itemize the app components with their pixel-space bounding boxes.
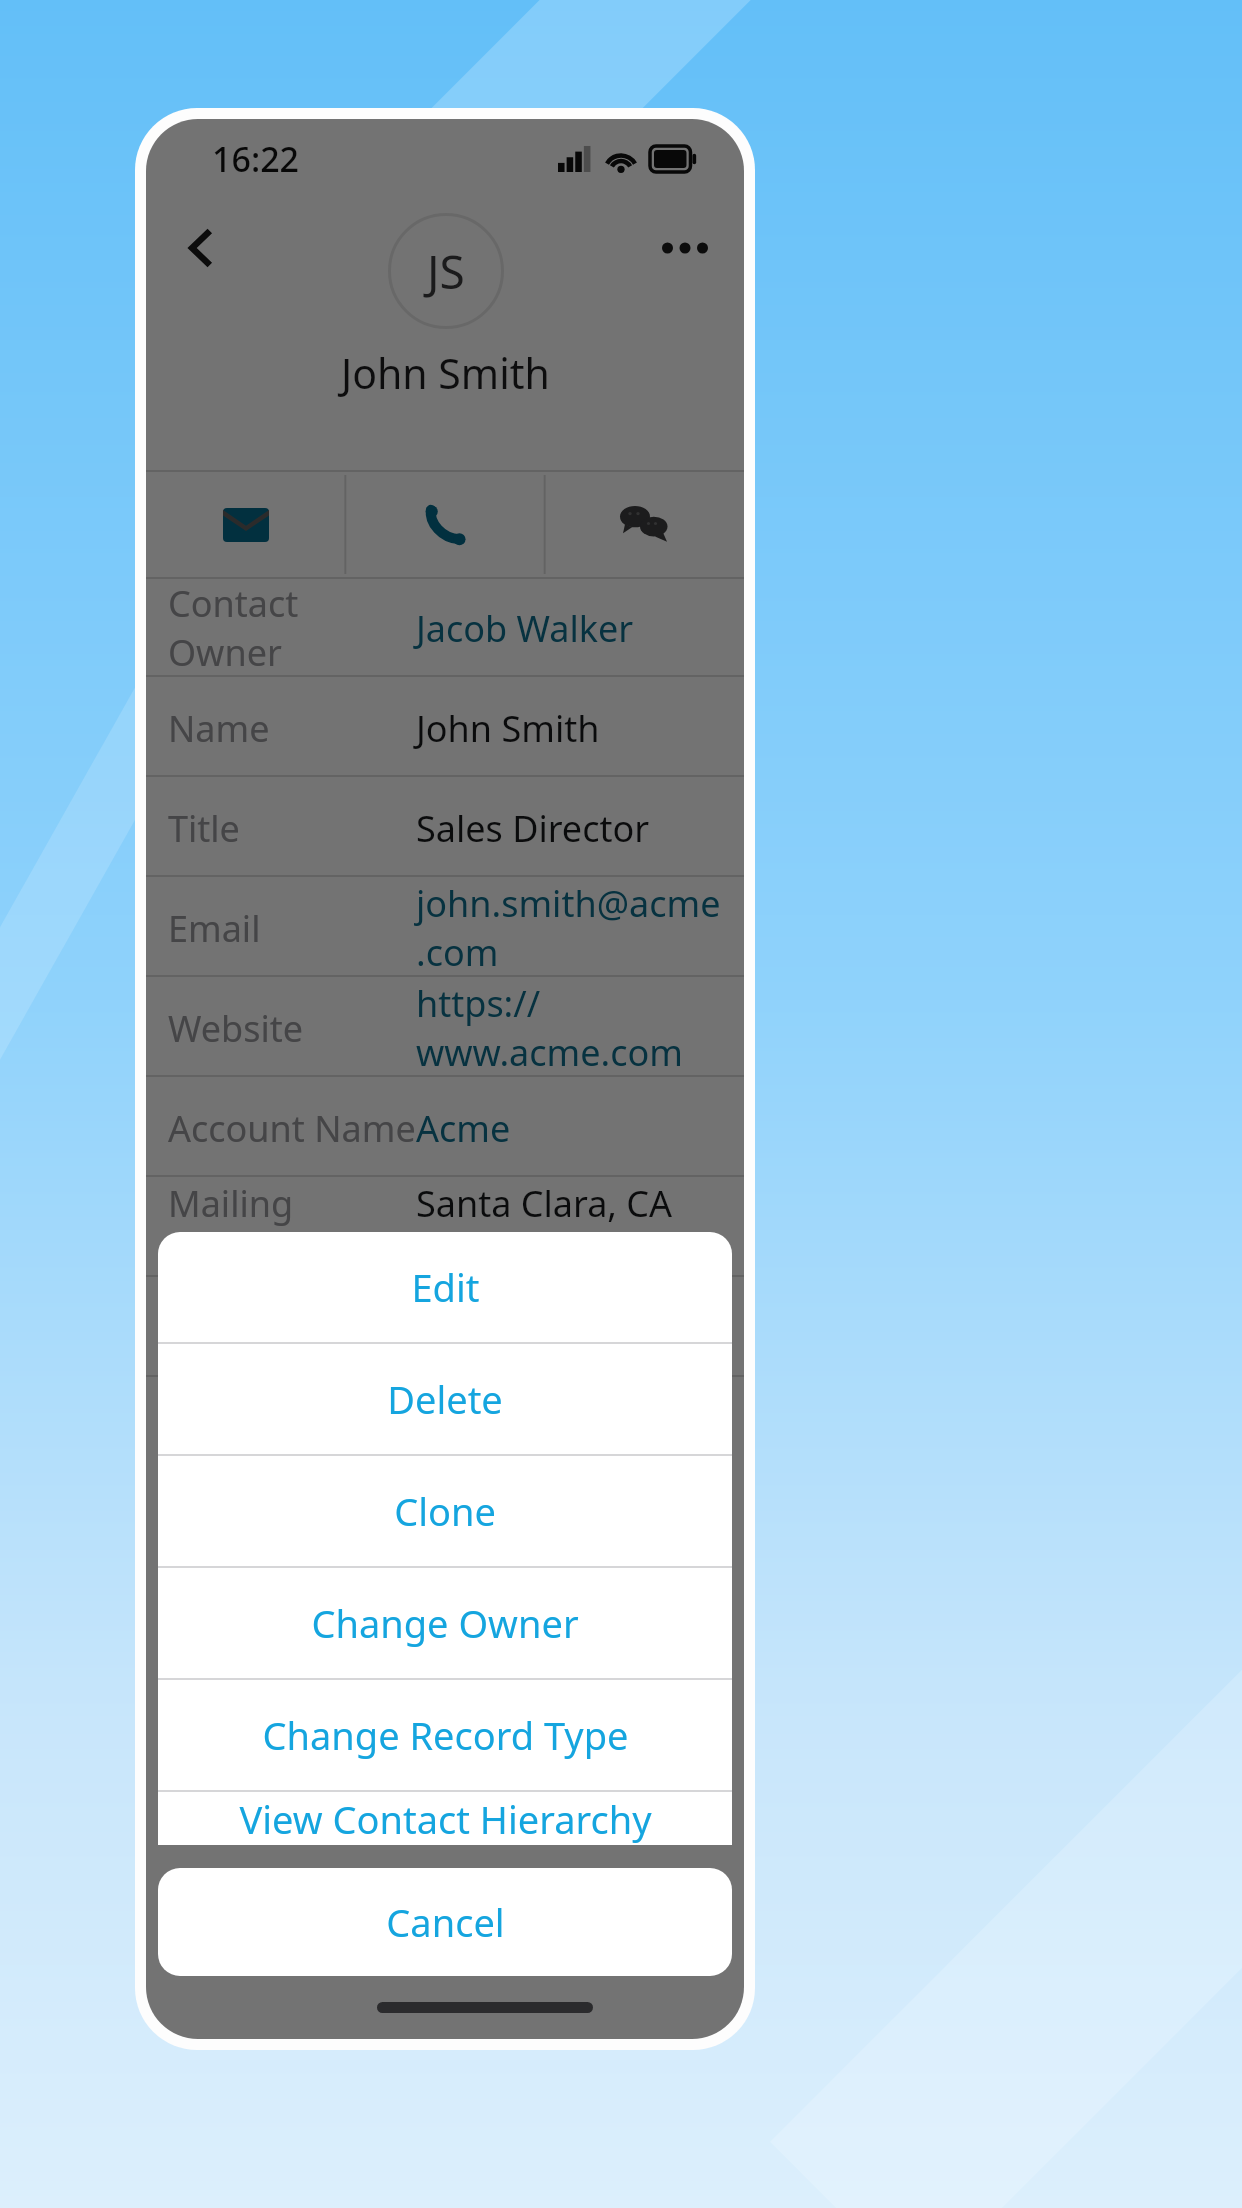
staticText: Change Record Type <box>262 1709 629 1761</box>
button[interactable]: Delete <box>158 1344 732 1454</box>
button[interactable]: Call <box>346 471 545 578</box>
staticText: Clone <box>394 1485 496 1537</box>
button[interactable]: Edit <box>158 1232 732 1342</box>
staticText: John Smith <box>341 345 550 401</box>
button[interactable]: Cancel <box>158 1868 732 1976</box>
staticText: Cancel <box>386 1896 505 1948</box>
staticText: JS <box>427 240 465 303</box>
button[interactable]: Name <box>146 678 744 778</box>
button[interactable]: Change Record Type <box>158 1680 732 1790</box>
staticText: Website <box>168 1004 416 1053</box>
staticText: Name <box>168 704 416 753</box>
button[interactable]: Mailing Address <box>146 1178 744 1278</box>
button[interactable]: Contact Owner <box>146 578 744 678</box>
staticText: Jacob Walker <box>416 604 634 653</box>
staticText: 16:22 <box>212 136 300 182</box>
button[interactable]: Account Name <box>146 1078 744 1178</box>
staticText: Title <box>168 804 416 853</box>
staticText: Santa Clara, CA 95054 <box>416 1179 722 1277</box>
button[interactable]: Website <box>146 978 744 1078</box>
button[interactable]: Email <box>146 878 744 978</box>
staticText: john.smith@acme.com <box>416 879 722 977</box>
button[interactable]: Chat <box>545 471 744 578</box>
button[interactable]: Other Address <box>146 1278 744 1378</box>
button[interactable]: More options <box>644 207 726 289</box>
button[interactable]: Back <box>162 207 244 289</box>
staticText: View Contact Hierarchy <box>239 1793 652 1845</box>
button[interactable]: Clone <box>158 1456 732 1566</box>
staticText: Change Owner <box>311 1597 579 1649</box>
button[interactable]: Email <box>146 471 346 578</box>
button[interactable]: Title <box>146 778 744 878</box>
staticText: Sales Director <box>416 804 650 853</box>
staticText: Contact Owner <box>168 579 416 677</box>
button[interactable]: Change Owner <box>158 1568 732 1678</box>
staticText: Email <box>168 904 416 953</box>
staticText: John Smith <box>416 704 600 753</box>
staticText: Edit <box>411 1261 480 1313</box>
staticText: Delete <box>387 1373 503 1425</box>
staticText: Mailing Address <box>168 1179 416 1277</box>
staticText: Account Name <box>168 1104 416 1153</box>
button[interactable]: View Contact Hierarchy <box>158 1792 732 1845</box>
staticText: https://www.acme.com <box>416 979 722 1077</box>
staticText: Other Address <box>168 1304 416 1353</box>
staticText: Acme <box>416 1104 511 1153</box>
